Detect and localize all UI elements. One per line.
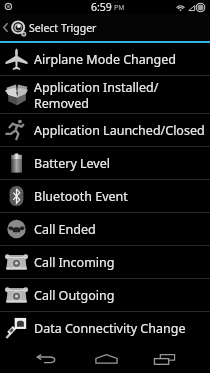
staticText: Application Installed/ Removed [34, 79, 159, 111]
button[interactable]: Airplane Mode Changed [0, 43, 210, 75]
staticText: Call Outgoing [34, 287, 115, 304]
staticText: Call Ended [34, 221, 96, 238]
button[interactable]: Data Connectivity Change [0, 312, 210, 344]
button[interactable]: Application Installed/ Removed [0, 76, 210, 113]
staticText: Data Connectivity Change [34, 320, 186, 337]
staticText: Select Trigger [29, 21, 97, 35]
button[interactable]: Battery Level [0, 147, 210, 179]
staticText: Call Incoming [34, 254, 115, 271]
staticText: Bluetooth Event [34, 188, 128, 205]
other: Navigate up [2, 22, 9, 33]
staticText: 6:59 [91, 0, 112, 14]
button[interactable]: Call Outgoing [0, 279, 210, 311]
staticText: Application Launched/Closed [34, 122, 205, 139]
button[interactable]: Call Incoming [0, 246, 210, 278]
staticText: PM [114, 3, 125, 13]
button[interactable]: Navigate up [0, 14, 97, 41]
button[interactable]: Bluetooth Event [0, 180, 210, 212]
staticText: Airplane Mode Changed [34, 51, 177, 68]
button[interactable]: Back [26, 345, 66, 373]
button[interactable]: Recent apps [144, 345, 184, 373]
button[interactable]: Call Ended [0, 213, 210, 245]
button[interactable]: Application Launched/Closed [0, 114, 210, 146]
button[interactable]: Home [86, 345, 126, 373]
staticText: Battery Level [34, 155, 110, 172]
